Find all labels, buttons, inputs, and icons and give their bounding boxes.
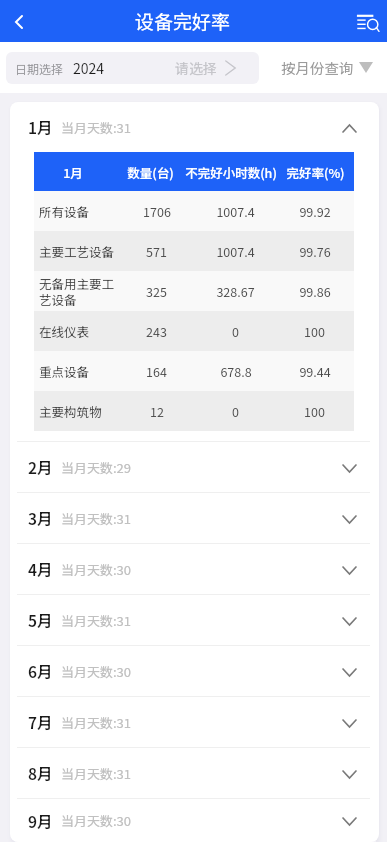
staticText: 6月 [28, 660, 53, 682]
staticText: 99.86 [299, 282, 331, 300]
button[interactable]: 5月 [10, 595, 379, 645]
staticText: 3月 [28, 507, 53, 529]
staticText: 在线仪表 [39, 322, 90, 340]
staticText: 100 [304, 322, 325, 340]
staticText: 完好率(%) [286, 163, 345, 181]
button[interactable]: 4月 [10, 544, 379, 594]
staticText: 571 [146, 242, 167, 260]
staticText: 当月天数:29 [61, 458, 132, 477]
staticText: 不完好小时数(h) [185, 163, 277, 181]
staticText: 100 [304, 402, 325, 420]
staticText: 当月天数:31 [61, 509, 132, 528]
staticText: 当月天数:31 [61, 764, 132, 783]
staticText: 当月天数:31 [61, 713, 132, 732]
staticText: 243 [146, 322, 167, 340]
staticText: 当月天数:30 [61, 560, 132, 579]
staticText: 当月天数:31 [61, 611, 132, 630]
staticText: 164 [146, 362, 167, 380]
staticText: 主要工艺设备 [39, 242, 115, 260]
staticText: 325 [146, 282, 167, 300]
staticText: 无备用主要工艺设备 [39, 274, 117, 309]
staticText: 主要构筑物 [39, 402, 102, 420]
staticText: 12 [150, 402, 164, 420]
staticText: 328.67 [216, 282, 255, 300]
button[interactable]: 9月 [10, 799, 379, 842]
staticText: 2月 [28, 456, 53, 478]
button[interactable]: 2月 [10, 442, 379, 492]
staticText: 所有设备 [39, 202, 90, 220]
staticText: 4月 [28, 558, 53, 580]
button[interactable]: 按月份查询 [281, 42, 373, 93]
button[interactable]: 7月 [10, 697, 379, 747]
staticText: 设备完好率 [135, 7, 231, 35]
staticText: 8月 [28, 762, 53, 784]
staticText: 日期选择 [15, 60, 64, 77]
staticText: 当月天数:30 [61, 811, 132, 830]
staticText: 99.92 [299, 202, 331, 220]
staticText: 1月 [63, 163, 83, 181]
button[interactable]: Search [351, 0, 387, 42]
staticText: 0 [232, 402, 239, 420]
staticText: 重点设备 [39, 362, 90, 380]
button[interactable]: 日期选择 [6, 52, 259, 84]
staticText: 数量(台) [127, 163, 174, 181]
button[interactable]: 8月 [10, 748, 379, 798]
staticText: 2024 [73, 58, 105, 78]
staticText: 1月 [28, 116, 53, 138]
button[interactable]: 3月 [10, 493, 379, 543]
button[interactable]: Back [0, 0, 40, 42]
button[interactable]: 6月 [10, 646, 379, 696]
staticText: 1706 [143, 202, 171, 220]
staticText: 1007.4 [216, 202, 255, 220]
button[interactable]: 1月 [10, 102, 379, 152]
staticText: 当月天数:30 [61, 662, 132, 681]
staticText: 5月 [28, 609, 53, 631]
staticText: 当月天数:31 [61, 118, 132, 137]
staticText: 1007.4 [216, 242, 255, 260]
staticText: 7月 [28, 711, 53, 733]
staticText: 9月 [28, 810, 53, 832]
staticText: 99.44 [299, 362, 331, 380]
staticText: 678.8 [220, 362, 252, 380]
staticText: 99.76 [299, 242, 331, 260]
staticText: 0 [232, 322, 239, 340]
staticText: 请选择 [175, 58, 217, 78]
staticText: 按月份查询 [281, 57, 354, 78]
